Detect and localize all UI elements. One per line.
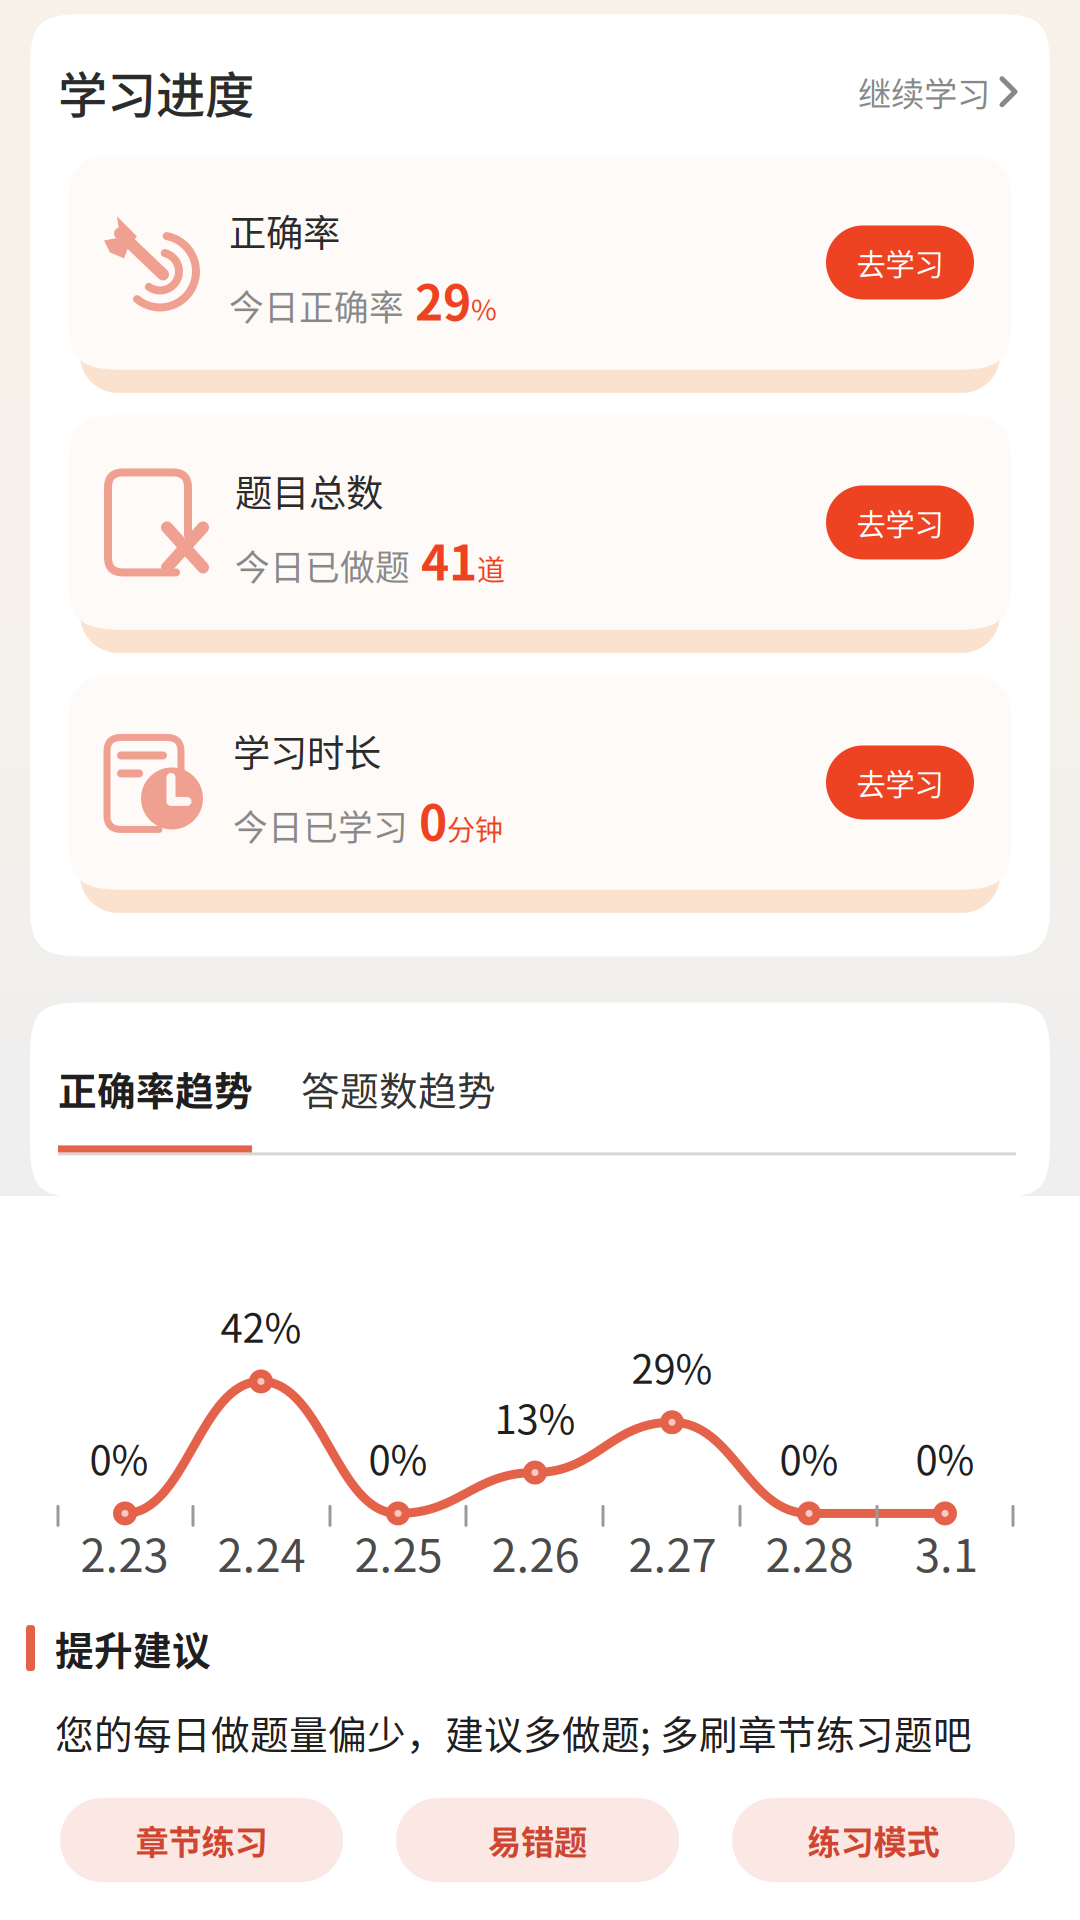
- button[interactable]: 正确率: [68, 157, 1012, 390]
- button[interactable]: 继续学习: [858, 68, 1018, 116]
- staticText: 29%: [631, 1337, 712, 1395]
- staticText: 42%: [220, 1296, 301, 1354]
- button[interactable]: 答题数趋势: [253, 1060, 496, 1116]
- staticText: 0%: [89, 1428, 148, 1486]
- button[interactable]: 学习时长: [68, 677, 1012, 910]
- staticText: %: [471, 288, 497, 328]
- staticText: 29: [404, 265, 471, 334]
- staticText: 13%: [494, 1388, 575, 1445]
- staticText: 2.27: [628, 1519, 716, 1585]
- staticText: 3.1: [915, 1519, 978, 1585]
- staticText: 0%: [779, 1428, 838, 1486]
- staticText: 易错题: [488, 1816, 587, 1864]
- staticText: 正确率: [229, 204, 340, 258]
- staticText: 章节练习: [135, 1816, 267, 1864]
- staticText: 0%: [915, 1428, 974, 1486]
- staticText: 2.24: [217, 1519, 305, 1585]
- staticText: 去学习: [856, 501, 943, 544]
- staticText: 去学习: [856, 761, 943, 804]
- button[interactable]: 正确率趋势: [58, 1060, 253, 1116]
- button[interactable]: 易错题: [396, 1798, 679, 1882]
- staticText: 分钟: [447, 808, 503, 848]
- staticText: 0%: [368, 1428, 427, 1486]
- staticText: 练习模式: [807, 1816, 939, 1864]
- staticText: 41: [410, 525, 477, 594]
- staticText: 您的每日做题量偏少，建议多做题; 多刷章节练习题吧: [55, 1704, 972, 1760]
- staticText: 提升建议: [55, 1620, 211, 1676]
- staticText: 正确率趋势: [58, 1060, 253, 1116]
- staticText: 今日已做题: [235, 540, 410, 590]
- button[interactable]: 练习模式: [732, 1798, 1015, 1882]
- staticText: 0: [408, 785, 447, 854]
- staticText: 答题数趋势: [301, 1060, 496, 1116]
- button[interactable]: 题目总数: [68, 417, 1012, 650]
- staticText: 今日已学习: [233, 800, 408, 850]
- staticText: 2.23: [80, 1519, 168, 1585]
- staticText: 2.25: [354, 1519, 442, 1585]
- staticText: 学习时长: [233, 724, 381, 778]
- staticText: 今日正确率: [229, 280, 404, 330]
- button[interactable]: 章节练习: [60, 1798, 343, 1882]
- staticText: 学习进度: [58, 56, 254, 127]
- staticText: 题目总数: [235, 464, 383, 518]
- staticText: 2.26: [491, 1519, 579, 1585]
- staticText: 2.28: [765, 1519, 853, 1585]
- staticText: 继续学习: [858, 68, 990, 116]
- staticText: 道: [477, 548, 505, 588]
- staticText: 去学习: [856, 241, 943, 284]
